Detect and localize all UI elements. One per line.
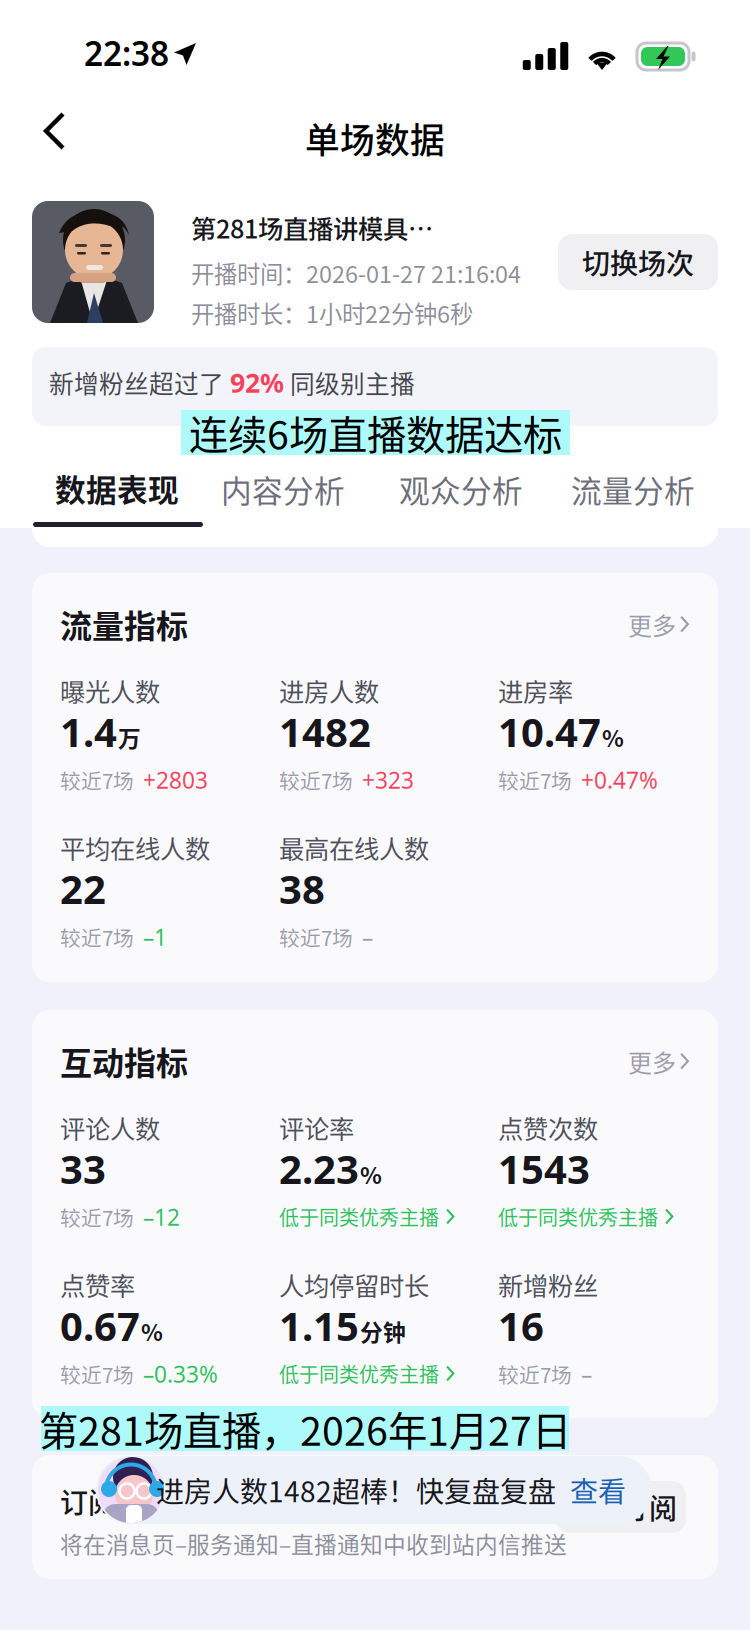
staticText: 较近7场 xyxy=(279,765,353,795)
staticText: % xyxy=(602,721,624,754)
staticText: 33 xyxy=(60,1142,106,1195)
staticText: 22:38 xyxy=(84,31,169,75)
staticText: 较近7场 xyxy=(498,1359,572,1389)
staticText: 第281场直播，2026年1月27日 xyxy=(39,1400,571,1457)
button[interactable]: 切换场次 xyxy=(558,234,718,290)
staticText: –0.33% xyxy=(143,1359,218,1389)
staticText: 观众分析 xyxy=(399,467,523,511)
staticText: 内容分析 xyxy=(221,467,345,511)
button[interactable]: 查看 xyxy=(570,1470,626,1510)
staticText: 曝光人数 xyxy=(60,672,160,709)
staticText: 流量分析 xyxy=(571,467,695,511)
staticText: 切换场次 xyxy=(582,242,694,282)
staticText: – xyxy=(581,1359,592,1389)
staticText: 万 xyxy=(118,721,141,754)
staticText: 互动指标 xyxy=(60,1038,188,1084)
staticText: 单场数据 xyxy=(305,113,445,163)
staticText: +323 xyxy=(362,765,414,795)
staticText: 第281场直播讲模具… xyxy=(191,209,433,246)
button[interactable]: 一键订阅 xyxy=(556,1481,686,1533)
staticText: 1482 xyxy=(279,705,371,758)
staticText: 进房率 xyxy=(498,672,573,709)
staticText: 低于同类优秀主播 xyxy=(498,1202,658,1231)
staticText: 16 xyxy=(498,1299,544,1352)
button[interactable]: 内容分析 xyxy=(221,467,345,511)
staticText: 进房人数1482超棒！快复盘复盘 xyxy=(156,1470,556,1510)
staticText: 开播时长：1小时22分钟6秒 xyxy=(191,296,473,330)
staticText: 低于同类优秀主播 xyxy=(279,1359,439,1388)
staticText: 订阅开播提醒 xyxy=(60,1481,228,1521)
staticText: 1.15 xyxy=(279,1299,359,1352)
staticText: –1 xyxy=(143,922,167,952)
button[interactable]: Back xyxy=(22,94,87,168)
staticText: 1.4 xyxy=(60,705,117,758)
staticText: 22 xyxy=(60,862,106,915)
staticText: 同级别主播 xyxy=(284,365,415,400)
staticText: 人均停留时长 xyxy=(279,1266,429,1303)
button[interactable]: 流量分析 xyxy=(571,467,695,511)
staticText: % xyxy=(360,1158,382,1191)
staticText: 点赞次数 xyxy=(498,1109,598,1146)
staticText: 较近7场 xyxy=(60,1359,134,1389)
staticText: 平均在线人数 xyxy=(60,829,210,866)
staticText: % xyxy=(141,1315,163,1348)
staticText: 1543 xyxy=(498,1142,590,1195)
staticText: 10.47 xyxy=(498,705,601,758)
staticText: 将在消息页–服务通知–直播通知中收到站内信推送 xyxy=(60,1527,567,1560)
staticText: 较近7场 xyxy=(60,765,134,795)
staticText: 评论率 xyxy=(279,1109,354,1146)
staticText: 新增粉丝超过了 xyxy=(49,365,230,400)
staticText: 分钟 xyxy=(360,1315,406,1348)
staticText: +2803 xyxy=(143,765,208,795)
staticText: 流量指标 xyxy=(60,601,188,647)
staticText: 低于同类优秀主播 xyxy=(279,1202,439,1231)
button[interactable]: 更多 xyxy=(628,1044,690,1079)
staticText: 38 xyxy=(279,862,325,915)
staticText: 开播时间：2026-01-27 21:16:04 xyxy=(191,256,521,290)
staticText: 进房人数 xyxy=(279,672,379,709)
staticText: 评论人数 xyxy=(60,1109,160,1146)
staticText: 2.23 xyxy=(279,1142,359,1195)
staticText: 0.67 xyxy=(60,1299,140,1352)
staticText: 较近7场 xyxy=(60,922,134,952)
staticText: 新增粉丝 xyxy=(498,1266,598,1303)
staticText: 最高在线人数 xyxy=(279,829,429,866)
staticText: 连续6场直播数据达标 xyxy=(189,404,562,461)
button[interactable]: 更多 xyxy=(628,607,690,642)
button[interactable]: 观众分析 xyxy=(399,467,523,511)
staticText: +0.47% xyxy=(581,765,658,795)
staticText: 点赞率 xyxy=(60,1266,135,1303)
staticText: 较近7场 xyxy=(60,1202,134,1232)
staticText: –12 xyxy=(143,1202,180,1232)
staticText: 较近7场 xyxy=(498,765,572,795)
staticText: 更多 xyxy=(628,607,676,642)
button[interactable]: 数据表现 xyxy=(55,466,179,510)
staticText: 更多 xyxy=(628,1044,676,1079)
staticText: 一键订阅 xyxy=(565,1487,677,1527)
staticText: – xyxy=(362,922,373,952)
staticText: 92% xyxy=(230,365,284,400)
staticText: 查看 xyxy=(570,1470,626,1510)
staticText: 较近7场 xyxy=(279,922,353,952)
staticText: 数据表现 xyxy=(55,466,179,510)
